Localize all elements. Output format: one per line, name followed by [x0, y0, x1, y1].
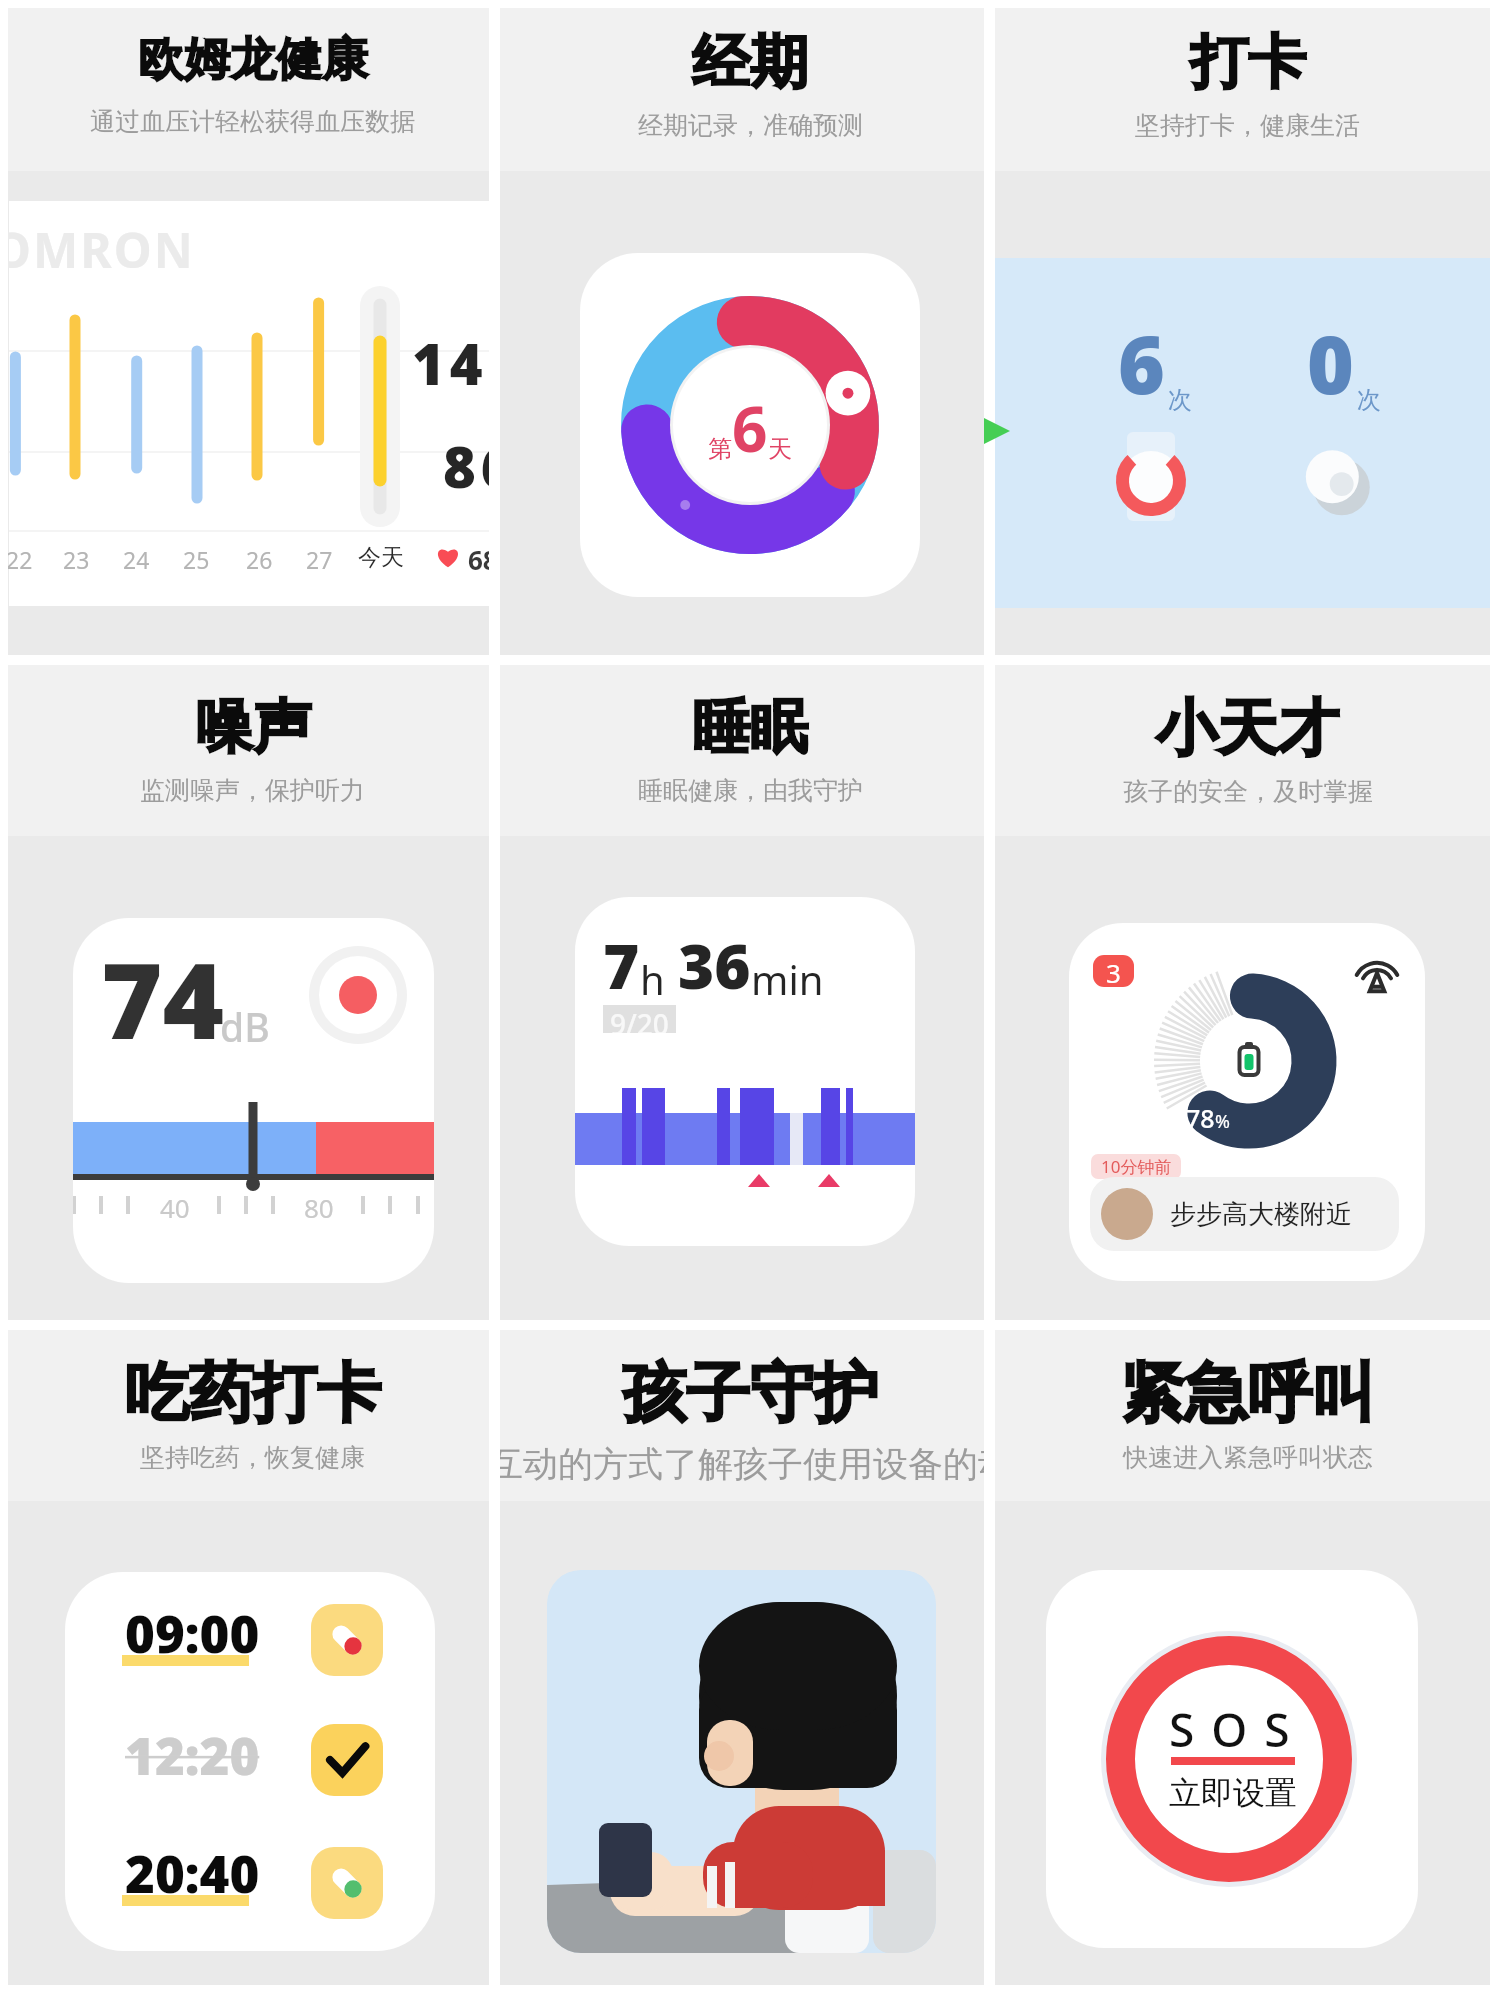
button[interactable]: 吃药打卡: [0, 1330, 489, 1999]
staticText: 86: [443, 428, 489, 504]
staticText: 0: [1307, 308, 1354, 417]
staticText: 快速进入紧急呼叫状态: [1123, 1442, 1373, 1473]
staticText: 睡眠: [692, 691, 808, 764]
staticText: 坚持吃药，恢复健康: [140, 1442, 365, 1473]
button[interactable]: Signal status: [1354, 949, 1400, 995]
staticText: 经期记录，准确预测: [638, 110, 863, 141]
staticText: 23: [63, 544, 90, 575]
staticText: 欧姆龙健康: [138, 31, 368, 89]
staticText: OMRON: [0, 217, 195, 282]
staticText: 6: [732, 386, 768, 470]
staticText: 紧急呼叫: [1120, 1353, 1376, 1434]
staticText: 3: [1106, 955, 1121, 987]
button[interactable]: 经期: [500, 0, 984, 655]
staticText: h: [640, 952, 665, 1006]
staticText: SOS: [1169, 1698, 1307, 1761]
button[interactable]: 欧姆龙健康: [0, 0, 489, 655]
staticText: 80: [304, 1190, 334, 1225]
staticText: 25: [183, 544, 210, 575]
staticText: 天: [768, 434, 792, 464]
button[interactable]: 紧急呼叫: [995, 1330, 1500, 1999]
staticText: 第: [708, 434, 732, 464]
staticText: 监测噪声，保护听力: [140, 775, 365, 806]
staticText: %: [1215, 1109, 1230, 1134]
staticText: 12:20: [125, 1720, 260, 1789]
staticText: 噪声: [195, 691, 311, 764]
staticText: 27: [306, 544, 333, 575]
button[interactable]: 睡眠: [500, 665, 984, 1320]
staticText: 74: [101, 927, 225, 1070]
staticText: 36: [678, 923, 751, 1007]
staticText: 7: [603, 923, 640, 1007]
staticText: 以互动的方式了解孩子使用设备的动态: [500, 1442, 984, 1486]
staticText: 22: [6, 544, 33, 575]
staticText: 次: [1168, 385, 1192, 415]
button[interactable]: 噪声: [0, 665, 489, 1320]
staticText: 次: [1357, 385, 1381, 415]
button[interactable]: Mark medicine taken: [311, 1847, 383, 1919]
staticText: 今天: [358, 543, 404, 572]
staticText: 孩子的安全，及时掌握: [1123, 776, 1373, 807]
button[interactable]: 孩子守护: [500, 1330, 984, 1999]
staticText: 142: [412, 325, 489, 401]
staticText: 68: [468, 542, 489, 577]
staticText: 9/20: [610, 1005, 669, 1033]
button[interactable]: Record noise: [309, 946, 407, 1044]
staticText: 10分钟前: [1101, 1155, 1172, 1178]
staticText: 20:40: [125, 1838, 260, 1907]
staticText: 孩子守护: [622, 1353, 878, 1434]
staticText: min: [751, 952, 824, 1006]
staticText: 26: [246, 544, 273, 575]
staticText: 立即设置: [1169, 1773, 1297, 1813]
staticText: 78: [1186, 1101, 1215, 1135]
button[interactable]: 打卡: [995, 0, 1500, 655]
staticText: dB: [220, 1000, 270, 1053]
staticText: 吃药打卡: [125, 1353, 381, 1434]
staticText: 经期: [692, 26, 808, 99]
staticText: 打卡: [1190, 26, 1306, 99]
staticText: 通过血压计轻松获得血压数据: [90, 106, 415, 137]
staticText: 小天才: [1156, 690, 1339, 767]
staticText: 坚持打卡，健康生活: [1135, 110, 1360, 141]
button[interactable]: Taken: [311, 1724, 383, 1796]
staticText: 09:00: [125, 1598, 260, 1667]
staticText: 步步高大楼附近: [1170, 1198, 1352, 1231]
staticText: 睡眠健康，由我守护: [638, 775, 863, 806]
button[interactable]: 小天才: [995, 665, 1500, 1320]
staticText: 6: [1118, 308, 1165, 417]
staticText: 40: [160, 1190, 190, 1225]
button[interactable]: Mark medicine taken: [311, 1604, 383, 1676]
staticText: 24: [123, 544, 150, 575]
